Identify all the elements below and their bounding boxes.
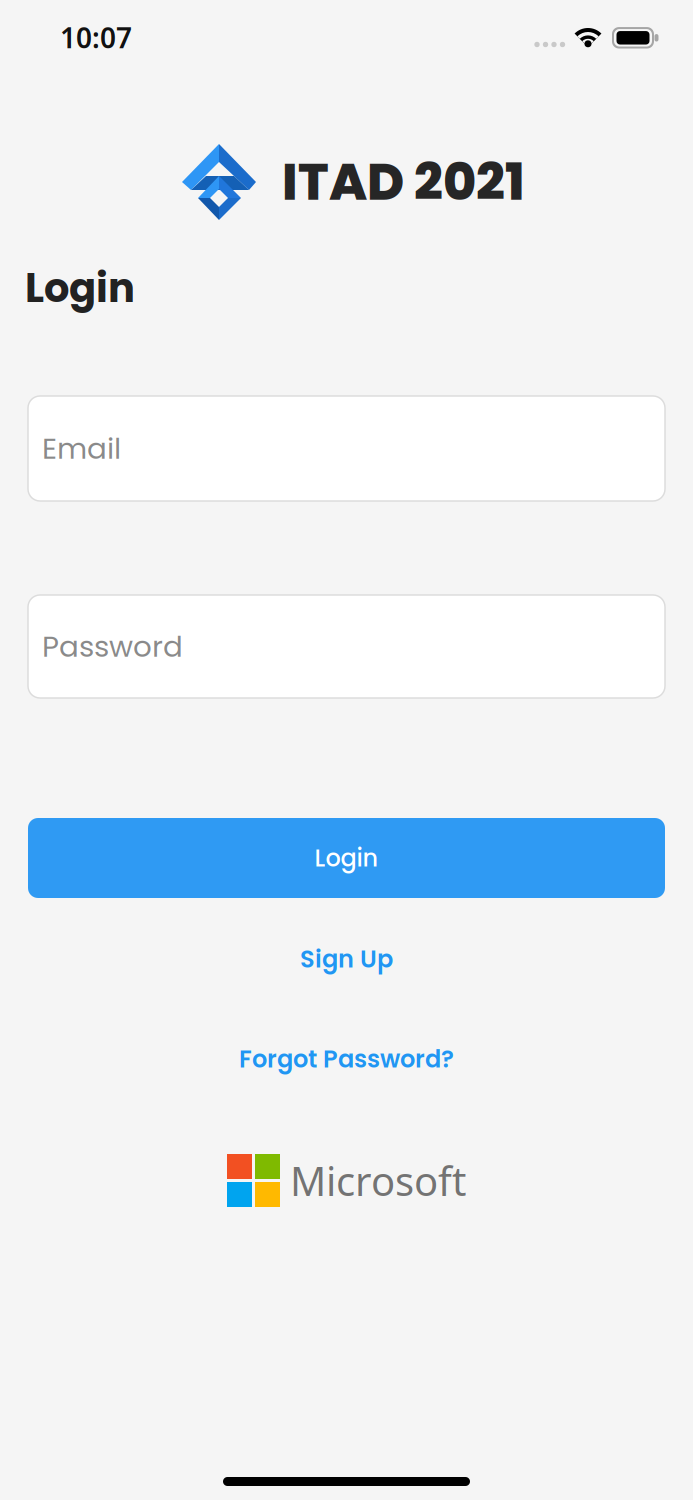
staticText: Forgot Password? [239, 1042, 454, 1076]
staticText: ITAD 2021 [282, 146, 525, 217]
staticText: Email [42, 428, 121, 469]
button[interactable]: Forgot Password? [239, 1042, 454, 1076]
staticText: Password [42, 626, 183, 667]
staticText: Login [25, 260, 135, 316]
button[interactable]: Sign Up [300, 942, 393, 976]
button[interactable]: Sign in with Microsoft [227, 1154, 466, 1207]
staticText: 10:07 [60, 19, 132, 56]
button[interactable]: Password [28, 595, 665, 698]
staticText: Sign Up [300, 942, 393, 976]
staticText: Login [314, 841, 378, 875]
button[interactable]: Login [28, 818, 665, 898]
staticText: Microsoft [290, 1154, 466, 1207]
button[interactable]: Email [28, 396, 665, 501]
